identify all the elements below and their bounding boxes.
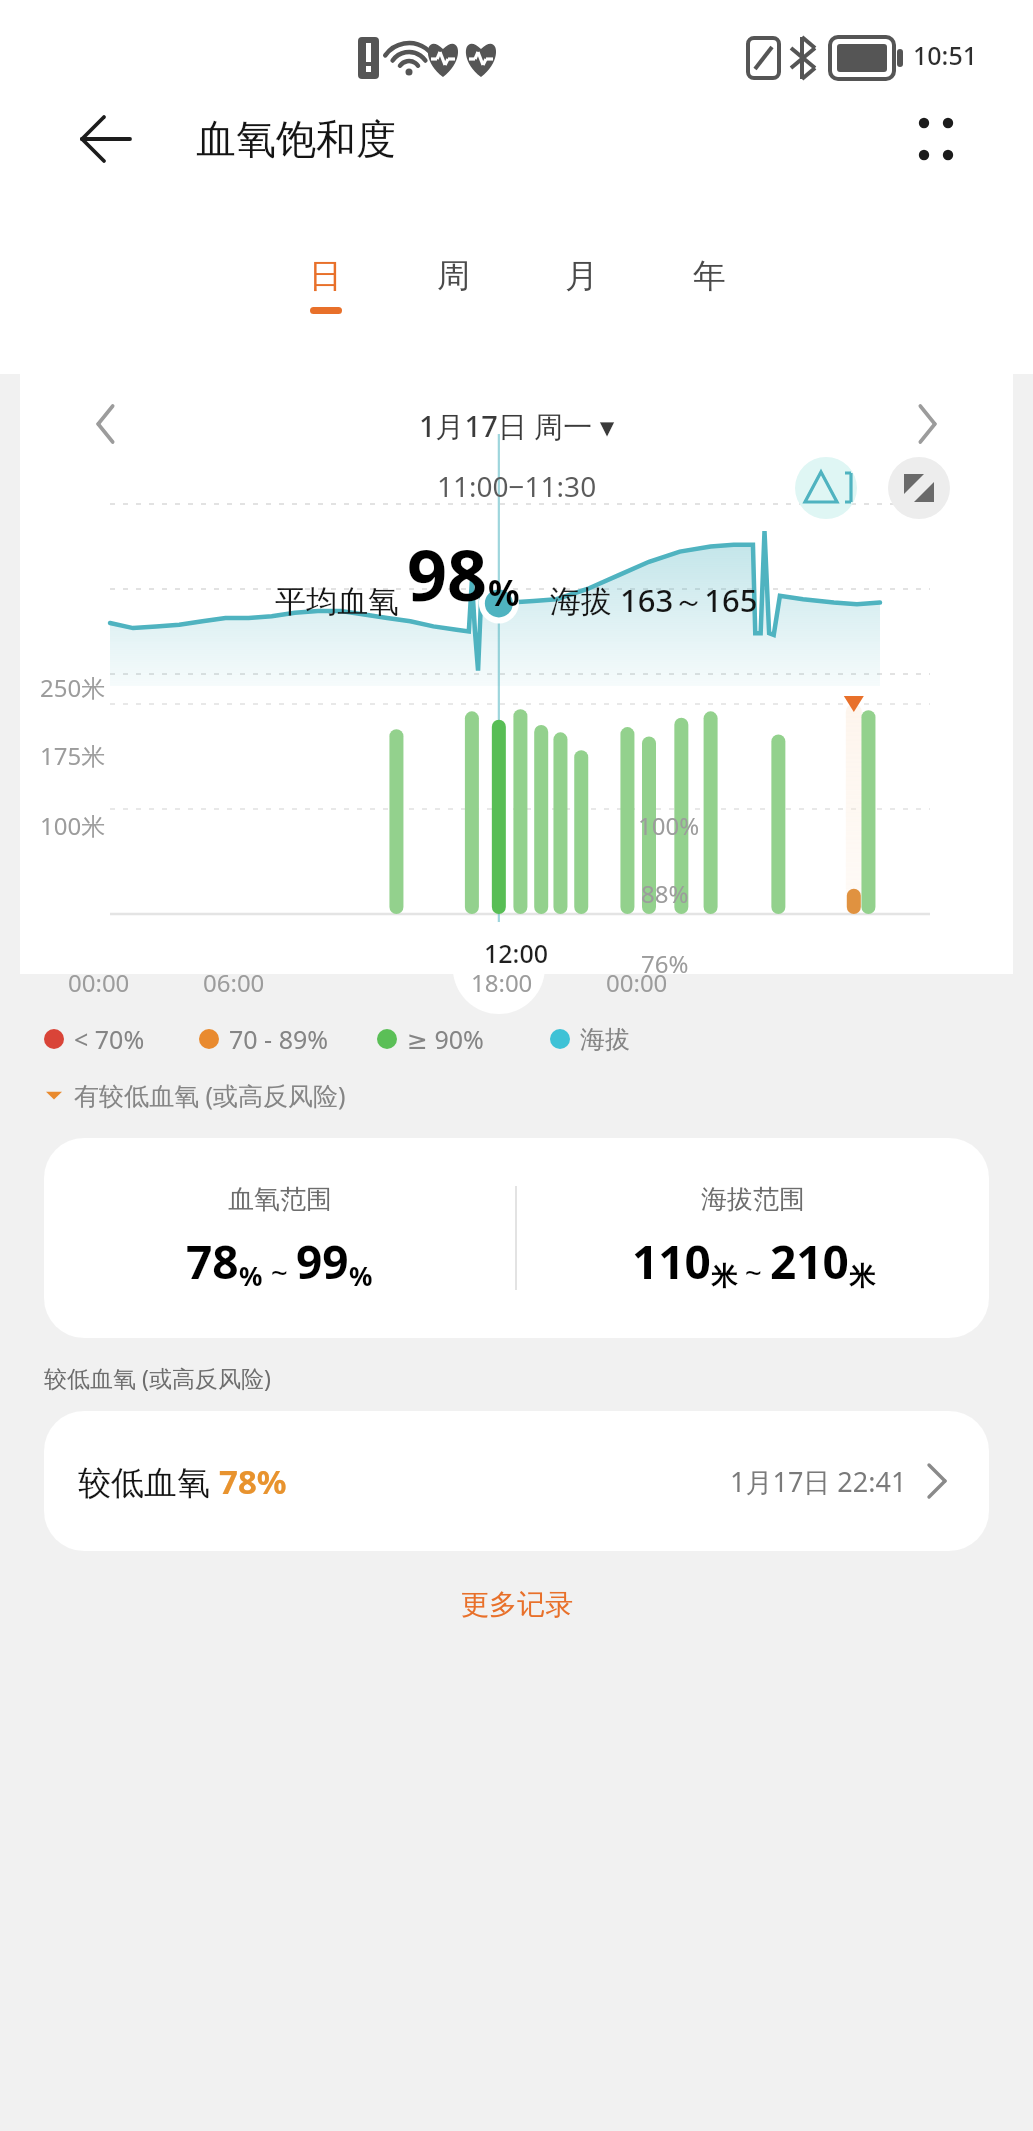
button[interactable]: Fullscreen [888, 457, 950, 519]
staticText: 250米 [40, 671, 106, 704]
staticText: 有较低血氧 (或高反风险) [74, 1078, 346, 1112]
staticText: 06:00 [203, 966, 265, 999]
staticText: 血氧范围 [228, 1183, 332, 1216]
staticText: 110 [632, 1230, 711, 1293]
staticText: 10:51 [913, 38, 978, 72]
staticText: % [239, 1258, 263, 1293]
staticText: 米 [711, 1260, 737, 1293]
staticText: 更多记录 [461, 1587, 573, 1622]
staticText: 11:00−11:30 [437, 467, 597, 505]
staticText: 日 [309, 255, 342, 297]
staticText: 78 [186, 1230, 239, 1293]
staticText: 100米 [40, 809, 106, 842]
staticText: 月 [565, 255, 598, 297]
staticText: ~ [263, 1252, 296, 1293]
staticText: % [349, 1258, 373, 1293]
staticText: 海拔 [580, 1024, 630, 1055]
button[interactable]: 周 [389, 194, 517, 374]
button[interactable]: 年 [645, 194, 773, 374]
button[interactable]: 日 [261, 194, 389, 374]
staticText: 00:00 [606, 966, 668, 999]
staticText: 1月17日 22:41 [730, 1463, 907, 1500]
staticText: 海拔范围 [701, 1183, 805, 1216]
button[interactable]: Altitude info [795, 457, 857, 519]
staticText: 周 [437, 255, 470, 297]
staticText: 99 [296, 1230, 349, 1293]
button[interactable]: 血氧范围 [44, 1138, 989, 1338]
staticText: 78% [219, 1459, 287, 1504]
staticText: % [488, 569, 520, 617]
button[interactable]: More options [905, 108, 967, 170]
staticText: ~ [737, 1252, 770, 1293]
staticText: ≥ 90% [407, 1022, 484, 1056]
staticText: 210 [770, 1230, 849, 1293]
staticText: 88% [641, 877, 689, 910]
staticText: 较低血氧 (或高反风险) [44, 1362, 271, 1393]
staticText: 海拔 163～165 [550, 579, 758, 621]
staticText: 100% [638, 809, 700, 842]
staticText: 年 [693, 255, 726, 297]
button[interactable]: Next day [899, 396, 955, 452]
staticText: 98 [407, 526, 488, 621]
staticText: < 70% [74, 1022, 145, 1056]
button[interactable]: Previous day [78, 396, 134, 452]
staticText: 70 - 89% [229, 1022, 329, 1056]
staticText: 平均血氧 [275, 582, 399, 621]
button[interactable]: 月 [517, 194, 645, 374]
staticText: 血氧饱和度 [196, 114, 396, 164]
staticText: 00:00 [68, 966, 130, 999]
button[interactable]: Back [74, 107, 138, 171]
button[interactable]: 较低血氧 [44, 1411, 989, 1551]
staticText: 76% [641, 947, 689, 980]
staticText: 18:00 [471, 966, 533, 999]
staticText: 175米 [40, 739, 106, 772]
staticText: 1月17日 周一 ▾ [419, 406, 615, 446]
button[interactable]: 更多记录 [0, 1581, 1033, 1628]
staticText: 较低血氧 [78, 1459, 219, 1504]
staticText: 12:00 [484, 936, 549, 970]
staticText: 米 [849, 1260, 875, 1293]
